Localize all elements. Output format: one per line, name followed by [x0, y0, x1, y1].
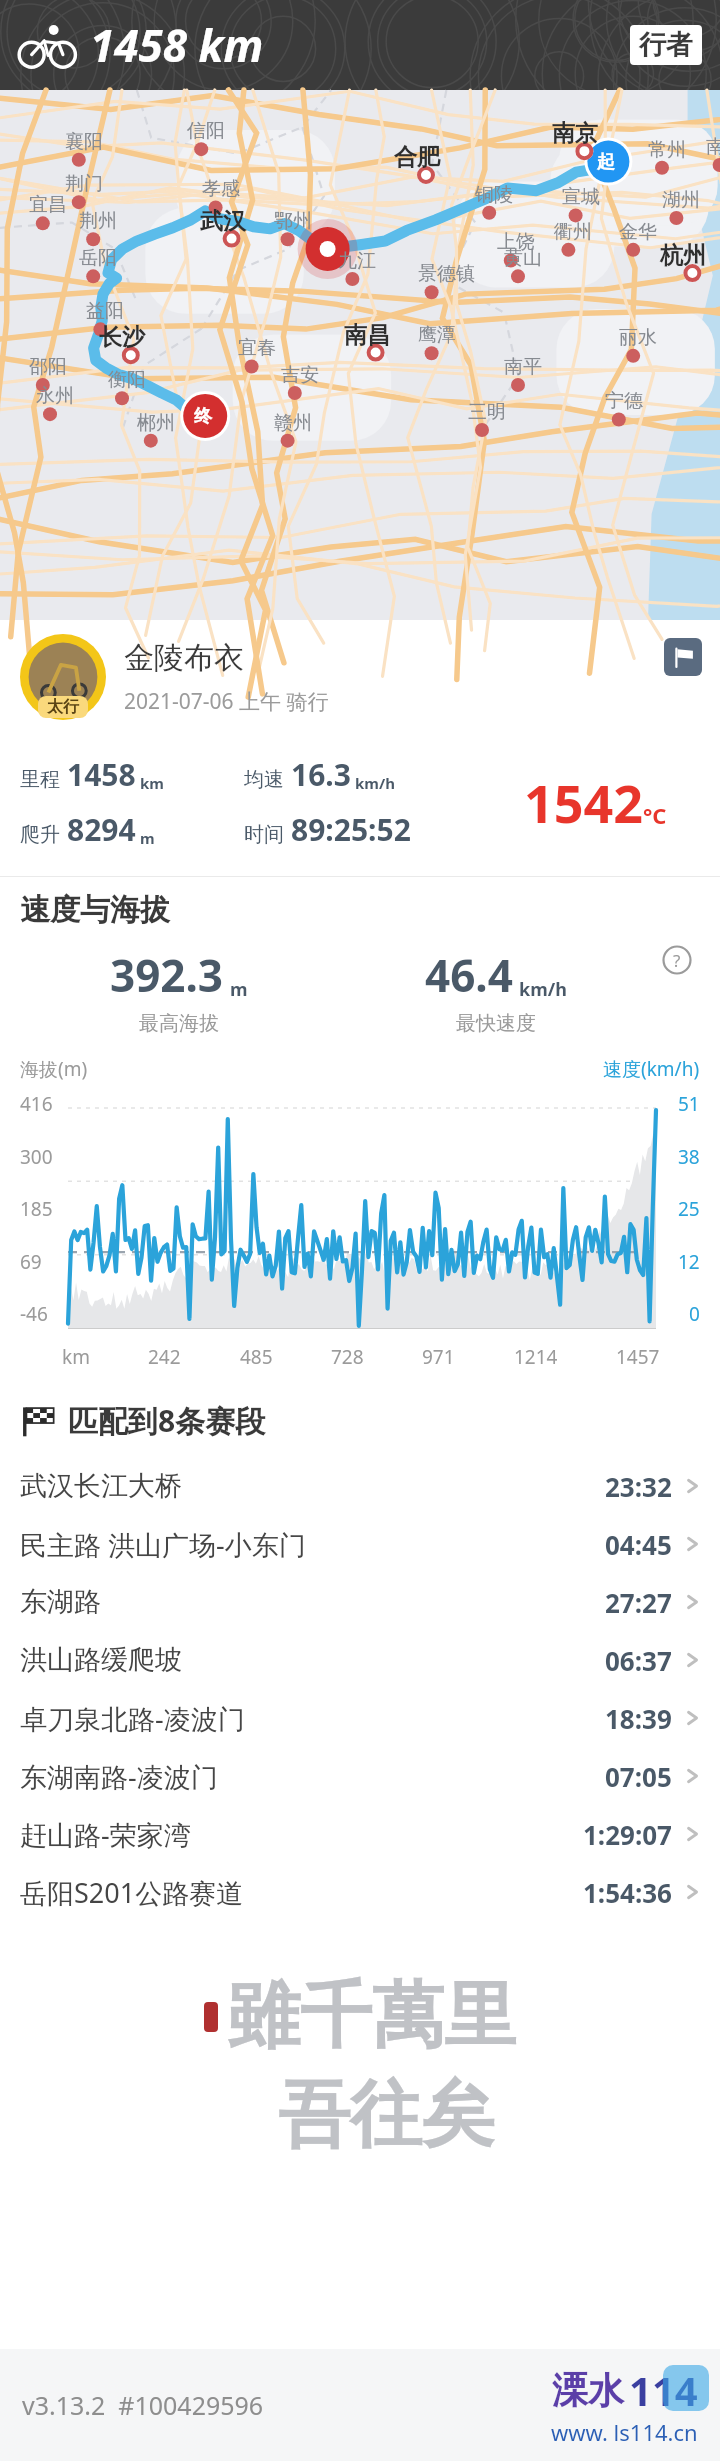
staticText: 宜昌 [29, 193, 67, 217]
staticText: 武汉长江大桥 [20, 1469, 182, 1503]
staticText: 黄山 [504, 246, 542, 270]
staticText: 衡阳 [108, 368, 146, 392]
staticText: 38 [678, 1144, 700, 1170]
staticText: 均速 [244, 767, 284, 792]
staticText: 爬升 [20, 822, 60, 847]
staticText: 常州 [648, 138, 686, 162]
staticText: km/h [355, 773, 395, 793]
staticText: 最快速度 [456, 1011, 536, 1036]
staticText: m [230, 977, 248, 1002]
staticText: 里程 [20, 767, 60, 792]
button[interactable]: 洪山路缓爬坡 [0, 1631, 720, 1689]
staticText: 0 [689, 1301, 700, 1327]
staticText: -46 [20, 1301, 48, 1327]
button[interactable]: 东湖南路-凌波门 [0, 1747, 720, 1805]
button[interactable]: 东湖路 [0, 1573, 720, 1631]
staticText: 宜春 [238, 336, 276, 360]
staticText: 金陵布衣 [124, 639, 244, 677]
staticText: 襄阳 [65, 130, 103, 154]
staticText: 行者 [639, 28, 693, 62]
staticText: 242 [148, 1344, 181, 1370]
staticText: 07:05 [605, 1759, 672, 1794]
staticText: 杭州 [660, 241, 706, 270]
button[interactable]: Help [662, 945, 692, 975]
staticText: 益阳 [86, 299, 124, 323]
staticText: 铜陵 [475, 183, 513, 207]
button[interactable]: 赶山路-荣家湾 [0, 1805, 720, 1863]
staticText: 鹰潭 [418, 323, 456, 347]
staticText: 971 [422, 1344, 455, 1370]
staticText: 卓刀泉北路-凌波门 [20, 1700, 245, 1737]
staticText: 300 [20, 1144, 53, 1170]
staticText: 鄂州 [274, 209, 312, 233]
staticText: 吾往矣 [278, 2070, 494, 2161]
staticText: 1214 [514, 1344, 558, 1370]
staticText: 宣城 [562, 185, 600, 209]
staticText: 1:29:07 [583, 1817, 672, 1852]
staticText: 728 [331, 1344, 364, 1370]
staticText: m [140, 828, 155, 848]
staticText: km [140, 773, 164, 793]
staticText: 雖千萬里 [228, 1971, 516, 2062]
staticText: 04:45 [605, 1527, 672, 1562]
staticText: 衢州 [554, 220, 592, 244]
staticText: 18:39 [605, 1701, 672, 1736]
staticText: v3.13.2 #100429596 [22, 2388, 264, 2422]
staticText: 速度(km/h) [603, 1056, 700, 1082]
staticText: 宁德 [605, 389, 643, 413]
staticText: 郴州 [137, 411, 175, 435]
staticText: 1458 [67, 754, 136, 795]
staticText: www. ls114.cn [551, 2417, 698, 2447]
staticText: 8294 [67, 809, 136, 850]
staticText: 南通 [706, 135, 720, 159]
staticText: 武汉 [200, 207, 246, 236]
staticText: 南平 [504, 355, 542, 379]
staticText: 匹配到8条赛段 [68, 1400, 266, 1441]
staticText: 岳阳S201公路赛道 [20, 1874, 244, 1911]
staticText: 1457 [616, 1344, 660, 1370]
staticText: 2021-07-06 上午 骑行 [124, 687, 329, 716]
staticText: 16.3 [291, 754, 351, 795]
staticText: 合肥 [394, 143, 440, 172]
staticText: 东湖南路-凌波门 [20, 1758, 218, 1795]
staticText: 三明 [468, 400, 506, 424]
staticText: 27:27 [605, 1585, 672, 1620]
staticText: 信阳 [187, 119, 225, 143]
staticText: 金华 [619, 220, 657, 244]
button[interactable]: 民主路 洪山广场-小东门 [0, 1515, 720, 1573]
staticText: 永州 [36, 384, 74, 408]
staticText: 185 [20, 1196, 53, 1222]
staticText: 九江 [338, 249, 376, 273]
staticText: 洪山路缓爬坡 [20, 1643, 182, 1677]
button[interactable]: 行者 [630, 25, 702, 65]
staticText: km/h [519, 977, 567, 1002]
other: Cycling [18, 23, 76, 67]
button[interactable]: Segments [664, 638, 702, 676]
staticText: 荆州 [79, 209, 117, 233]
staticText: 25 [678, 1196, 700, 1222]
staticText: 114 [629, 2363, 698, 2417]
staticText: 赶山路-荣家湾 [20, 1816, 191, 1853]
staticText: 南昌 [344, 321, 390, 350]
staticText: 吉安 [281, 363, 319, 387]
staticText: 赣州 [274, 411, 312, 435]
staticText: 速度与海拔 [20, 891, 170, 929]
staticText: 长沙 [99, 323, 145, 352]
staticText: 景德镇 [418, 262, 475, 286]
staticText: 51 [678, 1091, 700, 1117]
button[interactable]: 武汉长江大桥 [0, 1457, 720, 1515]
staticText: 06:37 [605, 1643, 672, 1678]
staticText: 69 [20, 1249, 42, 1275]
staticText: 上饶 [497, 230, 535, 254]
staticText: 荆门 [65, 172, 103, 196]
staticText: 89:25:52 [291, 809, 411, 850]
staticText: 南京 [552, 119, 598, 148]
button[interactable]: 卓刀泉北路-凌波门 [0, 1689, 720, 1747]
staticText: 丽水 [619, 326, 657, 350]
staticText: 起 [597, 151, 615, 174]
button[interactable]: 岳阳S201公路赛道 [0, 1863, 720, 1921]
staticText: 孝感 [202, 177, 240, 201]
staticText: 1:54:36 [583, 1875, 672, 1910]
staticText: °C [643, 800, 667, 830]
staticText: 岳阳 [79, 246, 117, 270]
